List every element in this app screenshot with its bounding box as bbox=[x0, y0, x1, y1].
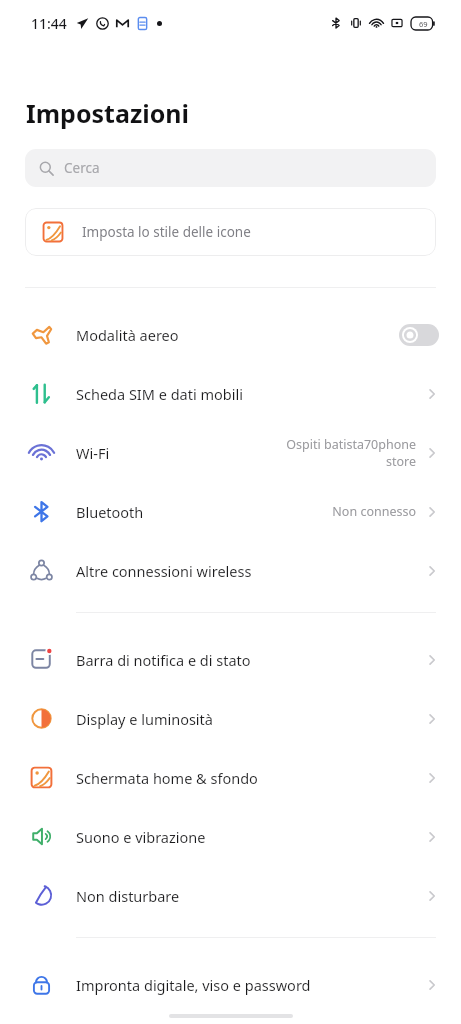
staticText: Impronta digitale, viso e password bbox=[76, 975, 311, 995]
button[interactable]: Barra di notifica e di stato bbox=[0, 630, 461, 689]
staticText: Suono e vibrazione bbox=[76, 827, 206, 847]
button[interactable]: Display e luminosità bbox=[0, 689, 461, 748]
staticText: Bluetooth bbox=[76, 502, 144, 522]
staticText: Ospiti batista70phone store bbox=[256, 436, 416, 469]
button[interactable]: Modalità aereo bbox=[0, 305, 461, 364]
button[interactable]: Attiva modalità aereo bbox=[399, 324, 439, 346]
button[interactable]: Imposta lo stile delle icone bbox=[25, 208, 436, 256]
staticText: Non connesso bbox=[332, 503, 416, 520]
staticText: Modalità aereo bbox=[76, 325, 179, 345]
button[interactable]: Altre connessioni wireless bbox=[0, 541, 461, 600]
staticText: Wi-Fi bbox=[76, 443, 110, 463]
staticText: Imposta lo stile delle icone bbox=[82, 223, 251, 241]
button[interactable]: Non disturbare bbox=[0, 866, 461, 925]
staticText: Barra di notifica e di stato bbox=[76, 650, 251, 670]
staticText: Non disturbare bbox=[76, 886, 180, 906]
staticText: Altre connessioni wireless bbox=[76, 561, 252, 581]
button[interactable]: Suono e vibrazione bbox=[0, 807, 461, 866]
button[interactable]: Schermata home & sfondo bbox=[0, 748, 461, 807]
staticText: Scheda SIM e dati mobili bbox=[76, 384, 243, 404]
staticText: Display e luminosità bbox=[76, 709, 213, 729]
button[interactable]: Wi-Fi bbox=[0, 423, 461, 482]
staticText: 69 bbox=[419, 19, 428, 29]
staticText: 11:44 bbox=[31, 14, 67, 33]
button[interactable]: Impronta digitale, viso e password bbox=[0, 955, 461, 1014]
button[interactable]: Bluetooth bbox=[0, 482, 461, 541]
button[interactable]: Scheda SIM e dati mobili bbox=[0, 364, 461, 423]
staticText: Cerca bbox=[64, 159, 100, 177]
staticText: Impostazioni bbox=[26, 96, 190, 130]
button[interactable]: Cerca bbox=[25, 149, 436, 187]
staticText: Schermata home & sfondo bbox=[76, 768, 258, 788]
